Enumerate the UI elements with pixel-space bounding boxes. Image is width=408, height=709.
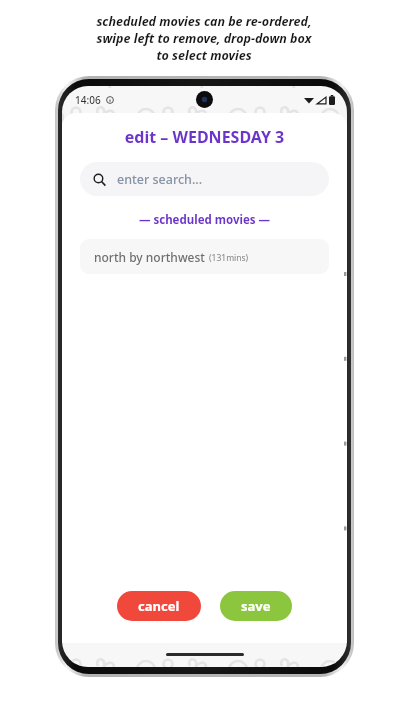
button[interactable]: save xyxy=(220,591,292,621)
staticText: cancel xyxy=(138,597,180,615)
staticText: scheduled movies can be re-ordered, swip… xyxy=(0,13,408,64)
staticText: edit – WEDNESDAY 3 xyxy=(62,126,347,148)
button[interactable]: north by northwest xyxy=(80,239,329,274)
staticText: enter search... xyxy=(117,171,203,188)
button[interactable]: Search xyxy=(80,162,329,196)
staticText: — scheduled movies — xyxy=(62,212,347,228)
staticText: 14:06 xyxy=(75,93,101,107)
staticText: (131mins) xyxy=(209,252,249,264)
other: Search xyxy=(93,173,106,186)
staticText: save xyxy=(241,597,271,615)
button[interactable]: cancel xyxy=(117,591,201,621)
staticText: north by northwest xyxy=(94,249,209,265)
